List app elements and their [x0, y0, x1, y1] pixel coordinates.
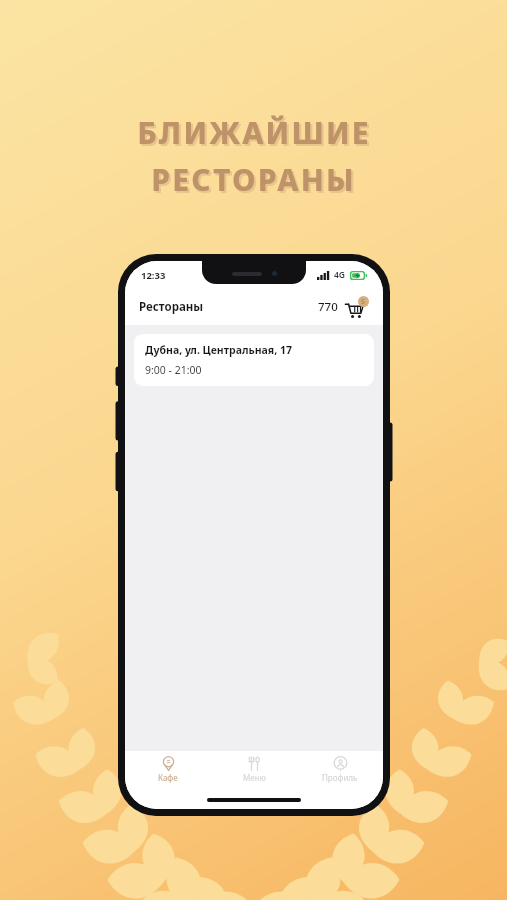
staticText: Меню — [243, 772, 266, 783]
button[interactable]: Дубна, ул. Центральная, 17 — [134, 334, 374, 386]
staticText: Кафе — [158, 772, 178, 783]
button[interactable]: Кафе — [125, 751, 211, 791]
staticText: Рестораны — [139, 299, 204, 315]
button[interactable]: Корзина — [345, 296, 369, 318]
staticText: 12:33 — [141, 269, 166, 282]
button[interactable]: Профиль — [297, 751, 383, 791]
staticText: Дубна, ул. Центральная, 17 — [145, 343, 292, 357]
staticText: БЛИЖАЙШИЕ — [139, 114, 373, 155]
staticText: 5 — [361, 297, 366, 307]
staticText: 770 — [318, 299, 338, 315]
staticText: РЕСТОРАНЫ — [153, 161, 358, 202]
staticText: БЛИЖАЙШИЕ — [137, 112, 371, 153]
staticText: РЕСТОРАНЫ — [151, 159, 356, 200]
button[interactable]: Меню — [211, 751, 297, 791]
staticText: 4G — [334, 269, 346, 281]
staticText: 9:00 - 21:00 — [145, 363, 202, 377]
staticText: Профиль — [322, 772, 358, 783]
